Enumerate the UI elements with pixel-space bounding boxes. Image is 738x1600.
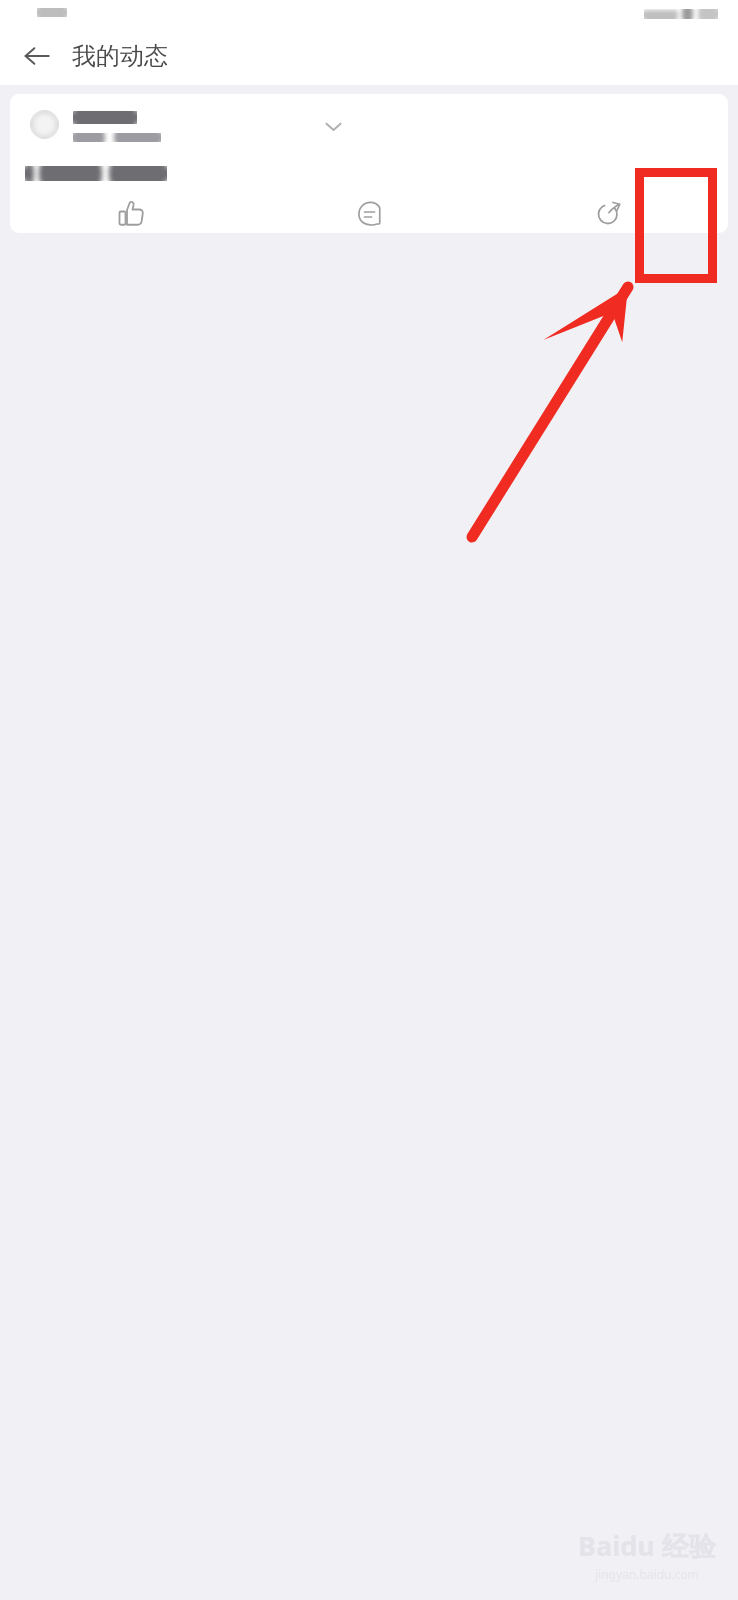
staticText: Baidu 经验	[578, 1527, 716, 1564]
button[interactable]: 展开	[10, 94, 728, 233]
staticText: jingyan.baidu.com	[595, 1566, 699, 1582]
button[interactable]: 点赞	[10, 194, 250, 233]
button[interactable]: 评论	[250, 194, 489, 233]
staticText: 我的动态	[72, 41, 168, 71]
button[interactable]: 分享	[489, 194, 728, 233]
button[interactable]: 返回	[14, 33, 60, 79]
button[interactable]: 展开	[316, 109, 350, 143]
